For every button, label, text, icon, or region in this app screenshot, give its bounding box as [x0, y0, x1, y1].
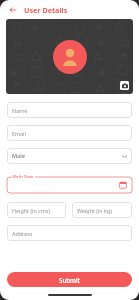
button[interactable]: Height (in cms) [7, 202, 66, 218]
button[interactable]: Male [7, 148, 132, 164]
button[interactable]: Weight (in kg) [72, 202, 132, 218]
staticText: Name [12, 107, 28, 114]
staticText: User Details [24, 5, 68, 15]
staticText: Male [12, 152, 25, 160]
button[interactable]: Birth Date [7, 173, 132, 193]
button[interactable]: Submit [7, 272, 132, 287]
button[interactable]: Profile photo [53, 40, 87, 74]
staticText: Email [12, 130, 26, 137]
button[interactable]: Change photo [120, 81, 129, 90]
staticText: Submit [59, 276, 81, 284]
button[interactable]: Back [6, 3, 19, 16]
other: Pick date [119, 181, 127, 189]
button[interactable]: Name [7, 102, 132, 118]
button[interactable]: Address [7, 225, 132, 241]
button[interactable]: Email [7, 125, 132, 141]
staticText: Birth Date [13, 173, 34, 179]
staticText: Address [12, 230, 33, 237]
staticText: Weight (in kg) [77, 207, 112, 214]
staticText: Height (in cms) [12, 207, 50, 214]
